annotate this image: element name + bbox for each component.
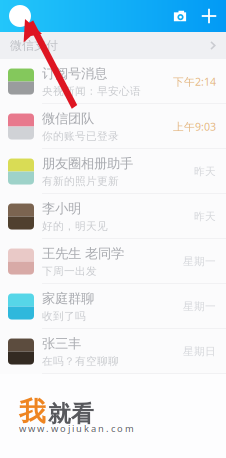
button[interactable]: 朋友圈相册助手 — [0, 149, 226, 194]
button[interactable]: 王先生 老同学 — [0, 239, 226, 284]
staticText: 星期日 — [183, 345, 216, 358]
staticText: 我 — [19, 395, 46, 428]
button[interactable]: 李小明 — [0, 194, 226, 239]
staticText: 就看 — [48, 400, 94, 428]
staticText: 星期一 — [183, 300, 216, 313]
staticText: 家庭群聊 — [42, 290, 94, 307]
staticText: 朋友圈相册助手 — [42, 155, 133, 172]
staticText: 好的，明天见 — [42, 220, 108, 233]
staticText: 昨天 — [194, 210, 216, 223]
button[interactable]: 微信团队 — [0, 104, 226, 149]
button[interactable]: Camera — [167, 3, 193, 29]
staticText: 央视新闻：早安心语 — [42, 85, 141, 98]
staticText: 下午2:14 — [173, 74, 216, 89]
staticText: 星期一 — [183, 255, 216, 268]
staticText: 收到了吗 — [42, 310, 86, 323]
button[interactable]: Profile — [9, 5, 31, 27]
staticText: 订阅号消息 — [42, 65, 107, 82]
button[interactable]: 家庭群聊 — [0, 284, 226, 329]
button[interactable]: New chat — [196, 3, 222, 29]
staticText: 微信支付 — [10, 38, 58, 53]
staticText: 有新的照片更新 — [42, 175, 119, 188]
button[interactable]: 张三丰 — [0, 329, 226, 374]
staticText: 王先生 老同学 — [42, 245, 124, 262]
button[interactable]: 订阅号消息 — [0, 59, 226, 104]
staticText: 上午9:03 — [173, 119, 216, 134]
staticText: 李小明 — [42, 200, 81, 217]
staticText: 在吗？有空聊聊 — [42, 355, 119, 368]
staticText: 微信团队 — [42, 110, 94, 127]
button[interactable]: 微信支付 — [0, 32, 226, 59]
staticText: 你的账号已登录 — [42, 130, 119, 143]
staticText: 张三丰 — [42, 335, 81, 352]
staticText: 下周一出发 — [42, 265, 97, 278]
staticText: 昨天 — [194, 165, 216, 178]
staticText: w w w . w o j i u k a n . c o m — [19, 422, 134, 435]
